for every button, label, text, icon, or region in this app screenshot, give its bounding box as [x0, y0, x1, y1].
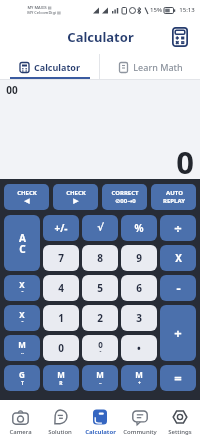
staticText: M	[57, 369, 65, 380]
button[interactable]: CORRECT	[102, 184, 147, 210]
button[interactable]: =	[160, 365, 196, 391]
staticText: 7	[58, 251, 64, 265]
staticText: 4	[58, 281, 64, 295]
staticText: 5	[97, 281, 103, 295]
staticText: A C	[19, 231, 26, 256]
staticText: ··	[21, 350, 24, 357]
staticText: X	[19, 309, 25, 320]
button[interactable]: ÷	[160, 215, 196, 241]
button[interactable]: +	[160, 305, 196, 361]
staticText: G	[19, 369, 25, 380]
button[interactable]: 8	[82, 245, 118, 271]
button[interactable]: -	[160, 275, 196, 301]
staticText: ÷	[174, 219, 182, 237]
staticText: CORRECT	[111, 189, 139, 197]
staticText: √	[97, 222, 104, 234]
staticText: +/-	[54, 221, 68, 235]
button[interactable]: AUTO	[151, 184, 196, 210]
button[interactable]: 1	[43, 305, 79, 331]
button[interactable]: 3	[121, 305, 157, 331]
staticText: ˆ	[21, 320, 24, 327]
staticText: X	[175, 251, 182, 265]
button[interactable]: √	[82, 215, 118, 241]
staticText: Learn Math	[133, 61, 183, 73]
button[interactable]: Settings	[160, 400, 200, 445]
button[interactable]	[172, 27, 188, 47]
button[interactable]: M	[4, 335, 40, 361]
button[interactable]: A C	[4, 215, 40, 271]
staticText: T	[21, 380, 24, 387]
staticText: Calculator	[85, 428, 116, 436]
staticText: 15%	[150, 6, 162, 14]
staticText: R	[59, 380, 63, 387]
staticText: %	[134, 221, 144, 235]
staticText: AUTO	[166, 189, 183, 197]
staticText: ▶	[73, 197, 79, 205]
button[interactable]: +/-	[43, 215, 79, 241]
staticText: Settings	[168, 428, 192, 436]
button[interactable]: 2	[82, 305, 118, 331]
staticText: M	[96, 369, 104, 380]
button[interactable]: Solution	[40, 400, 80, 445]
staticText: 3	[136, 311, 142, 325]
staticText: M	[135, 369, 143, 380]
button[interactable]: 6	[121, 275, 157, 301]
staticText: MY CelcomDigi ▤	[27, 10, 61, 15]
staticText: M	[18, 339, 26, 350]
button[interactable]: X	[4, 275, 40, 301]
staticText: X	[19, 279, 25, 290]
staticText: 0	[58, 341, 64, 355]
staticText: ◀	[24, 197, 30, 205]
button[interactable]: X	[160, 245, 196, 271]
staticText: ⊘00→0	[115, 197, 136, 205]
staticText: MY MAXIS ▤	[27, 5, 52, 10]
button[interactable]: Learn Math	[100, 54, 200, 79]
staticText: CHECK	[66, 189, 86, 197]
staticText: CHECK	[17, 189, 37, 197]
button[interactable]: G	[4, 365, 40, 391]
button[interactable]: 9	[121, 245, 157, 271]
staticText: 6	[136, 281, 142, 295]
staticText: -	[176, 279, 181, 297]
staticText: 0	[176, 141, 194, 183]
staticText: 8	[97, 251, 103, 265]
staticText: ˆ	[99, 350, 102, 357]
button[interactable]: M	[82, 365, 118, 391]
staticText: Community	[123, 428, 157, 436]
staticText: ˆ	[21, 290, 24, 297]
button[interactable]: Calculator	[80, 400, 120, 445]
button[interactable]: Community	[120, 400, 160, 445]
staticText: Camera	[9, 428, 32, 436]
staticText: 9	[136, 251, 142, 265]
staticText: Calculator	[34, 61, 80, 73]
button[interactable]: 0	[43, 335, 79, 361]
button[interactable]: CHECK	[4, 184, 49, 210]
staticText: REPLAY	[163, 197, 185, 205]
button[interactable]: 0	[82, 335, 118, 361]
button[interactable]: X	[4, 305, 40, 331]
staticText: 2	[97, 311, 103, 325]
button[interactable]: M	[121, 365, 157, 391]
staticText: •	[137, 341, 141, 355]
button[interactable]: Calculator	[0, 54, 99, 79]
staticText: 15:13	[179, 6, 195, 14]
button[interactable]: 7	[43, 245, 79, 271]
button[interactable]: 4	[43, 275, 79, 301]
staticText: Calculator	[67, 28, 134, 46]
button[interactable]: M	[43, 365, 79, 391]
staticText: +	[174, 324, 182, 342]
button[interactable]: Camera	[0, 400, 40, 445]
button[interactable]: •	[121, 335, 157, 361]
button[interactable]: 5	[82, 275, 118, 301]
staticText: 0	[98, 339, 103, 350]
staticText: Solution	[48, 428, 72, 436]
staticText: +	[138, 380, 141, 387]
button[interactable]: %	[121, 215, 157, 241]
staticText: −	[99, 380, 102, 387]
staticText: =	[174, 369, 182, 387]
staticText: 1	[58, 311, 64, 325]
staticText: 00	[6, 83, 18, 97]
button[interactable]: CHECK	[53, 184, 98, 210]
